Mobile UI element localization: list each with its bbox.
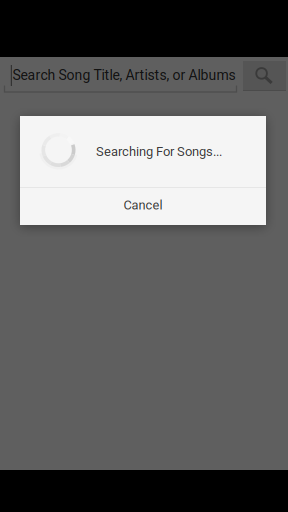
staticText: Search Song Title, Artists, or Albums <box>12 67 235 83</box>
button[interactable]: Cancel <box>20 188 266 225</box>
staticText: Cancel <box>123 197 162 212</box>
staticText: Searching For Songs... <box>96 144 222 159</box>
button[interactable]: Search <box>243 61 286 91</box>
